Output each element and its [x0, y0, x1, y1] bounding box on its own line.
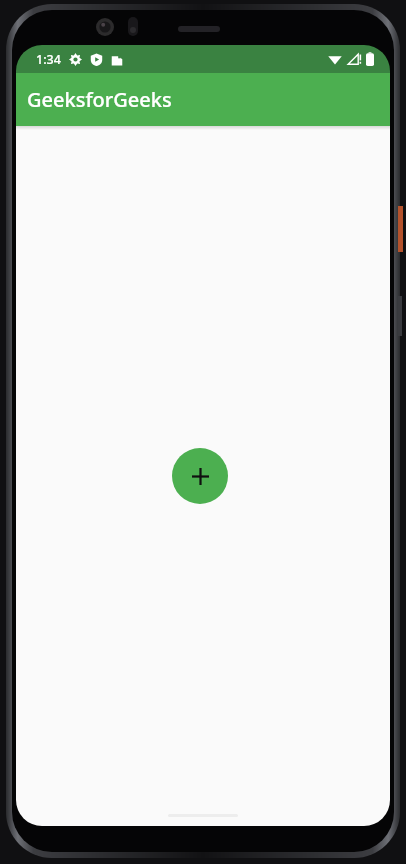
staticText: 1:34 — [36, 51, 61, 68]
staticText: GeeksforGeeks — [27, 86, 172, 113]
button[interactable]: Add — [172, 448, 228, 504]
